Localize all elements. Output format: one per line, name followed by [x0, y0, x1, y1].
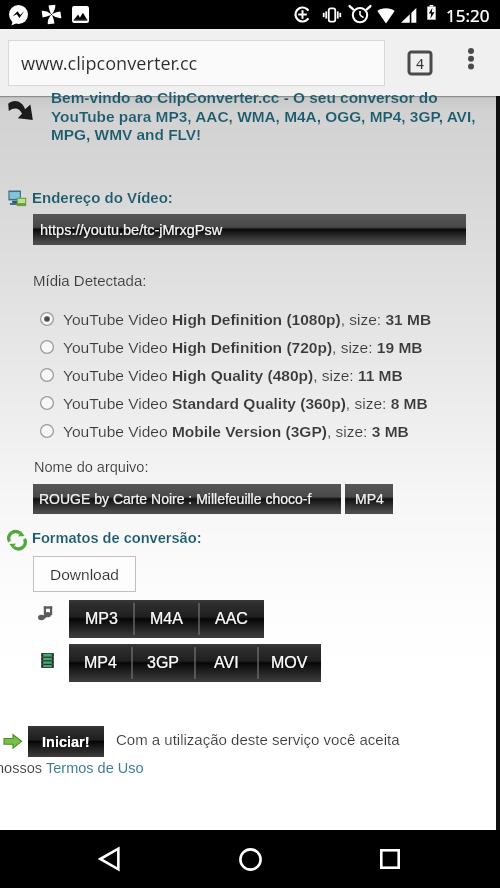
button[interactable]: YouTube Video High Definition (1080p), s…: [40, 308, 432, 330]
staticText: YouTube Video High Quality (480p), size:…: [63, 367, 403, 384]
staticText: www.clipconverter.cc: [21, 51, 198, 76]
button[interactable]: Tabs, 4 open: [400, 43, 440, 83]
button[interactable]: Home: [226, 835, 274, 883]
staticText: Bem-vindo ao ClipConverter.cc - O seu co…: [51, 89, 438, 106]
staticText: 4: [416, 54, 425, 73]
button[interactable]: More options: [453, 43, 489, 79]
staticText: MP4: [355, 491, 384, 507]
staticText: nossos: [0, 760, 46, 776]
staticText: MP4: [84, 654, 117, 672]
staticText: Mídia Detectada:: [33, 272, 147, 289]
button[interactable]: YouTube Video Standard Quality (360p), s…: [40, 392, 428, 414]
staticText: YouTube Video Standard Quality (360p), s…: [63, 395, 428, 412]
staticText: M4A: [150, 610, 183, 628]
staticText: Formatos de conversão:: [32, 530, 202, 546]
button[interactable]: www.clipconverter.cc: [8, 40, 385, 86]
staticText: https://youtu.be/tc-jMrxgPsw: [40, 222, 223, 238]
staticText: MP3: [85, 610, 118, 628]
staticText: Iniciar!: [42, 734, 90, 750]
button[interactable]: MOV: [258, 644, 321, 682]
staticText: Com a utilização deste serviço você acei…: [116, 731, 400, 748]
button[interactable]: Termos de Uso: [46, 760, 144, 776]
staticText: AVI: [214, 654, 239, 672]
staticText: YouTube para MP3, AAC, WMA, M4A, OGG, MP…: [51, 108, 476, 125]
button[interactable]: Back: [86, 835, 134, 883]
staticText: YouTube Video High Definition (1080p), s…: [63, 311, 432, 328]
button[interactable]: MP4: [345, 484, 393, 514]
button[interactable]: MP4: [69, 644, 132, 682]
button[interactable]: YouTube Video High Definition (720p), si…: [40, 336, 423, 358]
button[interactable]: https://youtu.be/tc-jMrxgPsw: [33, 214, 466, 245]
staticText: Nome do arquivo:: [34, 459, 149, 475]
button[interactable]: 3GP: [132, 644, 195, 682]
button[interactable]: AVI: [195, 644, 258, 682]
button[interactable]: ROUGE by Carte Noire : Millefeuille choc…: [33, 484, 341, 514]
button[interactable]: Download: [33, 556, 136, 592]
staticText: ROUGE by Carte Noire : Millefeuille choc…: [39, 491, 312, 507]
staticText: Download: [50, 566, 119, 583]
button[interactable]: M4A: [134, 600, 199, 638]
staticText: AAC: [215, 610, 248, 628]
button[interactable]: Iniciar!: [28, 726, 104, 757]
staticText: YouTube Video Mobile Version (3GP), size…: [63, 423, 409, 440]
staticText: MOV: [271, 654, 308, 672]
staticText: 15:20: [446, 4, 490, 27]
staticText: Endereço do Vídeo:: [32, 189, 173, 206]
button[interactable]: MP3: [69, 600, 134, 638]
button[interactable]: YouTube Video Mobile Version (3GP), size…: [40, 420, 409, 442]
button[interactable]: Recent apps: [366, 835, 414, 883]
staticText: MPG, WMV and FLV!: [51, 126, 202, 143]
button[interactable]: AAC: [199, 600, 264, 638]
button[interactable]: YouTube Video High Quality (480p), size:…: [40, 364, 403, 386]
staticText: 3GP: [147, 654, 180, 672]
staticText: YouTube Video High Definition (720p), si…: [63, 339, 423, 356]
